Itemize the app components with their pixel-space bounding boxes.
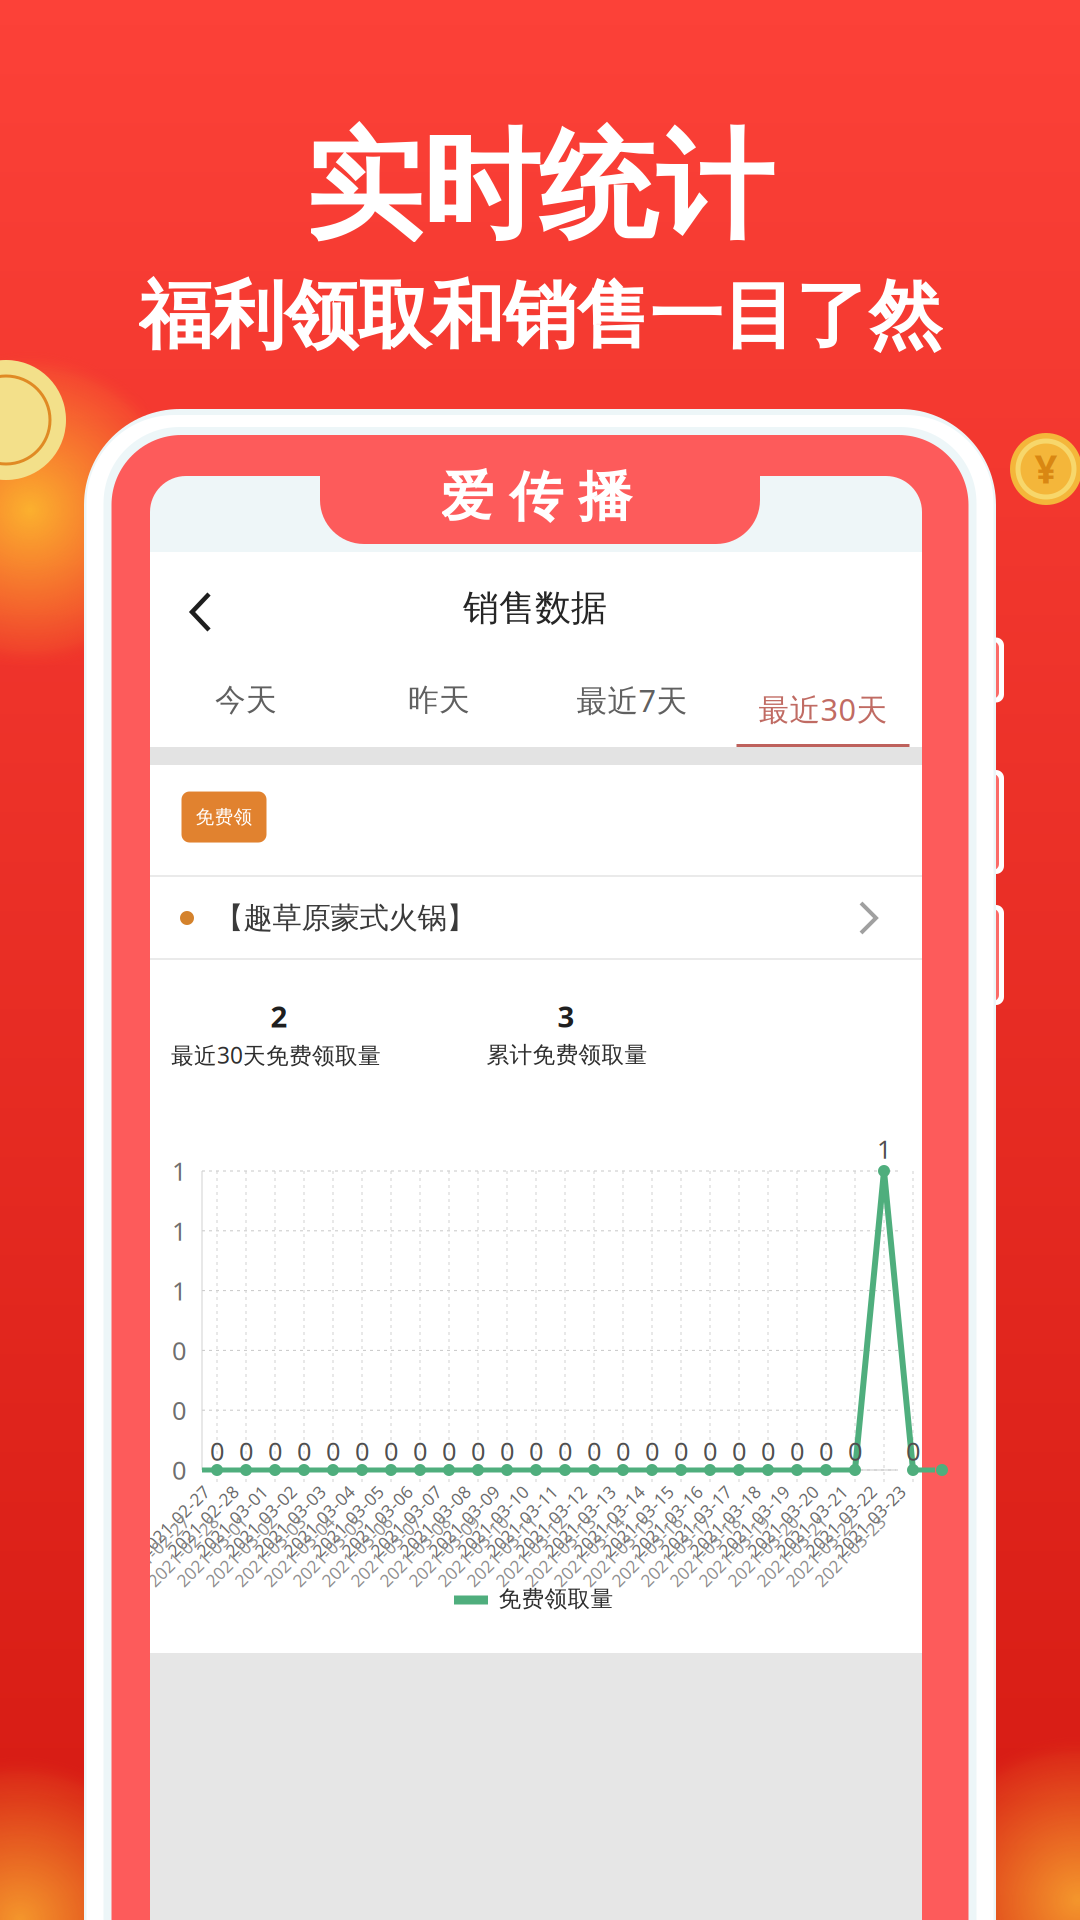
staticText: 0 <box>413 1434 427 1468</box>
staticText: 2021-03-10 <box>447 1509 539 1532</box>
staticText: 最近7天 <box>576 680 687 720</box>
staticText: 2021-03-04 <box>273 1509 365 1532</box>
staticText: 0 <box>848 1434 862 1468</box>
staticText: 2021-03-08 <box>369 1539 461 1562</box>
staticText: 2021-02-28 <box>137 1539 229 1562</box>
staticText: 0 <box>761 1434 775 1468</box>
staticText: 2021-03-01 <box>166 1539 258 1562</box>
staticText: 2021-03-18 <box>679 1509 771 1532</box>
staticText: 2021-03-20 <box>737 1509 829 1532</box>
staticText: 2021-03-13 <box>534 1509 626 1532</box>
staticText: 2021-03-03 <box>244 1509 336 1532</box>
staticText: 2021-03-17 <box>630 1539 722 1562</box>
staticText: 0 <box>297 1434 311 1468</box>
staticText: 最近30天免费领取量 <box>171 1040 381 1070</box>
staticText: 2021-03-05 <box>282 1539 374 1562</box>
staticText: 2021-03-17 <box>650 1509 742 1532</box>
button[interactable]: 免费领 <box>181 791 266 842</box>
staticText: 2 <box>270 996 287 1035</box>
staticText: 2021-03-14 <box>543 1539 635 1562</box>
staticText: 2021-03-22 <box>775 1539 867 1562</box>
staticText: 0 <box>172 1393 186 1427</box>
staticText: 2021-03-16 <box>601 1539 693 1562</box>
staticText: 0 <box>210 1434 224 1468</box>
staticText: 2021-03-12 <box>505 1509 597 1532</box>
button[interactable]: 最近30天 <box>726 662 919 756</box>
staticText: 2021-02-27 <box>128 1509 220 1532</box>
staticText: 2021-03-10 <box>427 1539 519 1562</box>
staticText: 2021-03-21 <box>766 1509 858 1532</box>
staticText: 1 <box>172 1274 186 1307</box>
staticText: 2021-03-06 <box>311 1539 403 1562</box>
staticText: 2021-03-18 <box>659 1539 751 1562</box>
staticText: 2021-03-09 <box>398 1539 490 1562</box>
staticText: 0 <box>471 1434 485 1468</box>
staticText: 2021-03-14 <box>563 1509 655 1532</box>
staticText: 2021-03-15 <box>572 1539 664 1562</box>
staticText: 爱 传 播 <box>440 464 631 530</box>
staticText: 2021-03-03 <box>224 1539 316 1562</box>
staticText: 2021-03-02 <box>195 1539 287 1562</box>
button[interactable]: 最近7天 <box>535 662 728 738</box>
staticText: 0 <box>819 1434 833 1468</box>
staticText: 2021-03-16 <box>621 1509 713 1532</box>
staticText: 2021-03-23 <box>824 1509 916 1532</box>
staticText: 最近30天 <box>758 689 887 729</box>
staticText: 2021-03-12 <box>485 1539 577 1562</box>
staticText: 2021-03-02 <box>215 1509 307 1532</box>
staticText: 0 <box>645 1434 659 1468</box>
staticText: 2021-03-11 <box>456 1539 548 1562</box>
staticText: 累计免费领取量 <box>486 1041 647 1069</box>
staticText: 0 <box>906 1434 920 1468</box>
staticText: 0 <box>703 1434 717 1468</box>
staticText: 0 <box>587 1434 601 1468</box>
staticText: 3 <box>557 996 574 1035</box>
staticText: 【趣草原蒙式火锅】 <box>214 900 475 936</box>
staticText: 2021-03-19 <box>688 1539 780 1562</box>
staticText: 2021-03-08 <box>389 1509 481 1532</box>
staticText: 2021-03-22 <box>795 1509 887 1532</box>
staticText: 0 <box>674 1434 688 1468</box>
staticText: 0 <box>384 1434 398 1468</box>
staticText: 2021-03-13 <box>514 1539 606 1562</box>
staticText: 2021-02-28 <box>157 1509 249 1532</box>
button[interactable]: 【趣草原蒙式火锅】 <box>150 877 922 959</box>
button[interactable]: 昨天 <box>342 662 535 738</box>
button[interactable]: 今天 <box>149 662 342 738</box>
staticText: 0 <box>268 1434 282 1468</box>
staticText: 0 <box>790 1434 804 1468</box>
staticText: 2021-03-11 <box>476 1509 568 1532</box>
staticText: 2021-03-05 <box>302 1509 394 1532</box>
staticText: 0 <box>732 1434 746 1468</box>
staticText: 2021-03-23 <box>804 1539 896 1562</box>
staticText: 0 <box>558 1434 572 1468</box>
staticText: ¥ <box>1034 441 1057 494</box>
staticText: 2021-03-07 <box>340 1539 432 1562</box>
staticText: 2021-03-04 <box>253 1539 345 1562</box>
staticText: 免费领 <box>195 805 252 828</box>
staticText: 2021-03-09 <box>418 1509 510 1532</box>
button[interactable]: 返回 <box>183 586 219 638</box>
staticText: 1 <box>877 1132 891 1166</box>
staticText: 2021-02-27 <box>108 1539 200 1562</box>
staticText: 2021-03-06 <box>331 1509 423 1532</box>
staticText: 0 <box>326 1434 340 1468</box>
staticText: 福利领取和销售一目了然 <box>138 271 941 361</box>
staticText: 昨天 <box>408 681 470 719</box>
staticText: 实时统计 <box>305 115 773 259</box>
staticText: 0 <box>500 1434 514 1468</box>
staticText: 0 <box>442 1434 456 1468</box>
staticText: 2021-03-19 <box>708 1509 800 1532</box>
staticText: 销售数据 <box>463 586 607 630</box>
staticText: 1 <box>172 1214 186 1248</box>
staticText: 0 <box>172 1334 186 1367</box>
staticText: 免费领取量 <box>498 1585 613 1613</box>
staticText: 2021-03-07 <box>360 1509 452 1532</box>
staticText: 2021-03-01 <box>186 1509 278 1532</box>
staticText: 2021-03-21 <box>746 1539 838 1562</box>
staticText: 2021-03-15 <box>592 1509 684 1532</box>
staticText: 0 <box>355 1434 369 1468</box>
staticText: 2021-03-20 <box>717 1539 809 1562</box>
staticText: 0 <box>239 1434 253 1468</box>
staticText: 1 <box>172 1154 186 1188</box>
